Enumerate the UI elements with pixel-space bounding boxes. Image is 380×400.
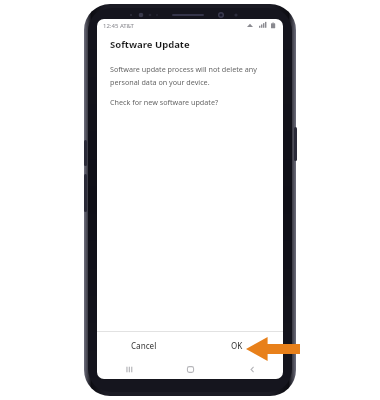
button[interactable]: OK	[190, 332, 283, 359]
staticText: Software Update	[110, 38, 190, 51]
staticText: Check for new software update?	[110, 97, 219, 107]
button[interactable]: Recent apps	[97, 359, 159, 379]
staticText: personal data on your device.	[110, 77, 210, 87]
staticText: 12:45 AT&T	[103, 22, 134, 30]
button[interactable]: Home	[159, 359, 221, 379]
staticText: Cancel	[131, 340, 157, 351]
button[interactable]: Back	[221, 359, 283, 379]
staticText: OK	[231, 340, 243, 351]
staticText: Software update process will not delete …	[110, 64, 257, 74]
other: Pointer arrow to OK	[246, 337, 300, 361]
button[interactable]: Cancel	[97, 332, 190, 359]
